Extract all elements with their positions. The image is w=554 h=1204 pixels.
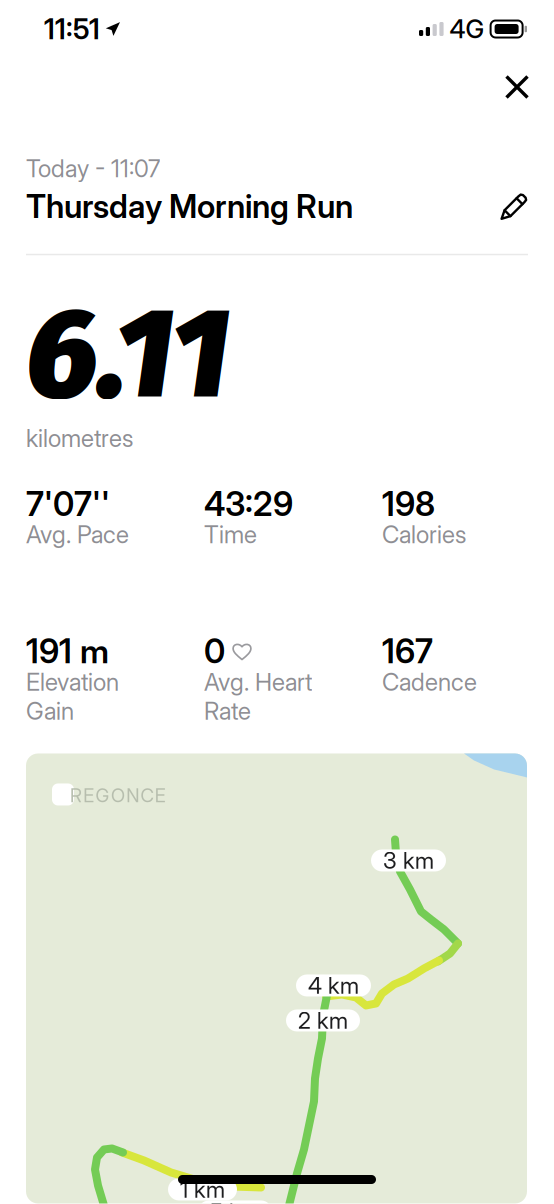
button[interactable]: Edit: [500, 192, 528, 220]
staticText: 167: [382, 631, 433, 671]
staticText: Time: [204, 520, 257, 549]
staticText: 1 km: [180, 1176, 225, 1203]
staticText: Calories: [382, 520, 466, 549]
staticText: 43:29: [204, 484, 293, 524]
staticText: 191 m: [26, 631, 109, 671]
staticText: 198: [382, 484, 435, 524]
staticText: 6.11: [26, 279, 230, 430]
staticText: 0: [204, 631, 225, 671]
staticText: Cadence: [382, 667, 477, 696]
button[interactable]: Route map: [26, 753, 527, 1203]
staticText: Avg. Pace: [26, 520, 129, 549]
staticText: 3 km: [383, 847, 434, 874]
staticText: Today - 11:07: [26, 154, 160, 183]
staticText: kilometres: [26, 424, 133, 453]
staticText: Avg. Heart Rate: [204, 667, 312, 725]
staticText: 5 km: [210, 1198, 260, 1204]
staticText: 2 km: [298, 1007, 348, 1034]
button[interactable]: Close: [491, 61, 543, 113]
staticText: REGONCE: [70, 784, 166, 807]
staticText: 4G: [450, 14, 485, 44]
staticText: 4 km: [308, 972, 359, 999]
staticText: 11:51: [44, 12, 100, 46]
staticText: 7'07'': [26, 484, 110, 524]
staticText: Thursday Morning Run: [26, 187, 353, 226]
staticText: Elevation Gain: [26, 667, 119, 725]
